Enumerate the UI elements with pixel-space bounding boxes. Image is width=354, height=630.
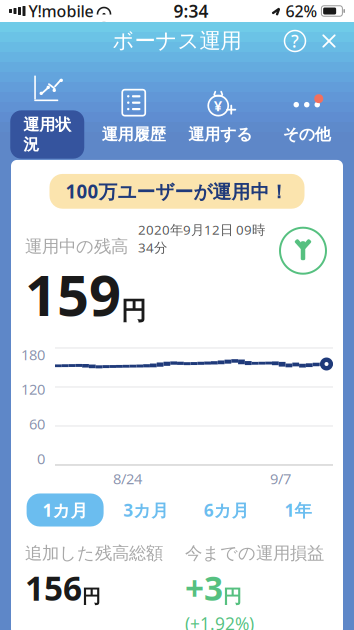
staticText: +3 <box>185 566 223 610</box>
button[interactable]: 運用状況 <box>4 71 90 161</box>
staticText: 運用状況 <box>23 115 71 154</box>
staticText: 1カ月 <box>43 498 88 521</box>
staticText: 6カ月 <box>204 498 249 521</box>
staticText: ¥ <box>214 96 222 115</box>
button[interactable]: 1カ月 <box>27 493 104 526</box>
staticText: 1年 <box>284 498 311 521</box>
staticText: 120 <box>21 379 45 399</box>
staticText: 今までの運用損益 <box>185 542 324 564</box>
staticText: 159 <box>25 257 121 331</box>
button[interactable]: その他 <box>263 86 350 146</box>
staticText: 180 <box>21 345 45 364</box>
button[interactable]: ¥ <box>177 86 263 146</box>
staticText: 円 <box>82 585 101 608</box>
staticText: Y!mobile <box>28 0 93 22</box>
staticText: (+1.92%) <box>185 612 254 630</box>
staticText: 運用する <box>188 125 252 144</box>
staticText: その他 <box>283 125 331 144</box>
staticText: 2020年9月12日 09時34分 <box>138 221 265 256</box>
button[interactable]: 1年 <box>268 493 327 526</box>
staticText: 9/7 <box>270 469 291 488</box>
staticText: 8/24 <box>113 469 142 488</box>
button[interactable]: 6カ月 <box>188 493 265 526</box>
staticText: ? <box>291 29 299 52</box>
staticText: 円 <box>223 585 242 608</box>
staticText: 運用履歴 <box>102 125 166 144</box>
staticText: 運用中の残高 <box>25 236 128 257</box>
staticText: 円 <box>121 295 146 326</box>
button[interactable]: ヘルプ <box>278 24 312 58</box>
staticText: 100万ユーザーが運用中！ <box>65 179 288 204</box>
button[interactable]: 3カ月 <box>107 493 184 526</box>
staticText: 追加した残高総額 <box>25 542 163 564</box>
button[interactable]: 運用履歴 <box>90 86 177 146</box>
staticText: 9:34 <box>173 0 208 22</box>
button[interactable]: 閉じる <box>312 24 346 58</box>
staticText: 0 <box>37 449 45 468</box>
staticText: ボーナス運用 <box>112 28 241 54</box>
staticText: 60 <box>29 414 45 434</box>
staticText: 3カ月 <box>123 498 168 521</box>
staticText: 156 <box>25 566 82 610</box>
staticText: 62% <box>285 0 317 22</box>
